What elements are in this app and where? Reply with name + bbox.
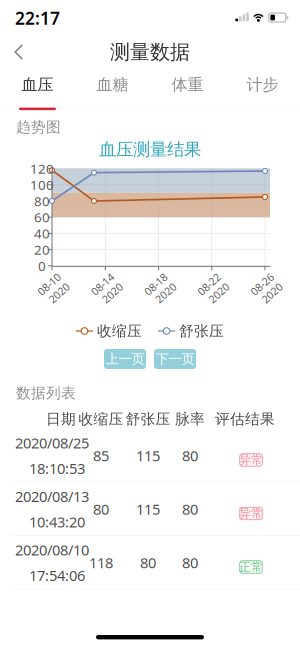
staticText: 120 xyxy=(30,160,54,177)
staticText: 2020/08/25 xyxy=(15,433,89,452)
staticText: 数据列表 xyxy=(16,384,76,402)
staticText: 异常 xyxy=(239,506,263,521)
staticText: 17:54:06 xyxy=(29,565,85,585)
staticText: 0 xyxy=(38,257,46,275)
button[interactable]: 下一页 xyxy=(154,349,196,369)
staticText: 08-18 xyxy=(134,270,161,284)
staticText: 舒张压 xyxy=(179,322,224,340)
staticText: 18:10:53 xyxy=(29,458,85,478)
staticText: 80 xyxy=(182,499,198,519)
staticText: 体重 xyxy=(171,75,203,94)
button[interactable]: 血糖 xyxy=(75,70,150,108)
staticText: 血压 xyxy=(21,75,53,94)
staticText: 2020 xyxy=(137,283,161,297)
staticText: 下一页 xyxy=(155,351,194,367)
staticText: 收缩压 xyxy=(97,322,142,340)
staticText: 2020 xyxy=(30,283,54,297)
staticText: 舒张压 xyxy=(125,410,170,428)
button[interactable]: 计步 xyxy=(225,70,300,108)
staticText: 08-22 xyxy=(187,270,214,284)
button[interactable]: 上一页 xyxy=(104,349,146,369)
staticText: 上一页 xyxy=(105,351,144,367)
staticText: 2020 xyxy=(243,283,267,297)
button[interactable]: 血压 xyxy=(0,70,75,108)
staticText: 80 xyxy=(182,553,198,572)
staticText: 115 xyxy=(136,446,160,465)
staticText: 2020 xyxy=(190,283,214,297)
staticText: 115 xyxy=(136,499,160,519)
staticText: 22:17 xyxy=(15,6,60,29)
staticText: 异常 xyxy=(239,453,263,467)
staticText: 日期 xyxy=(46,410,76,428)
staticText: 80 xyxy=(93,499,109,519)
staticText: 10:43:20 xyxy=(29,512,85,531)
staticText: 计步 xyxy=(246,75,278,94)
staticText: 血压测量结果 xyxy=(99,139,201,160)
staticText: 118 xyxy=(89,553,113,572)
button[interactable]: Back xyxy=(0,34,39,70)
staticText: 评估结果 xyxy=(215,410,275,428)
staticText: 100 xyxy=(30,176,54,194)
staticText: 正常 xyxy=(239,560,263,574)
staticText: 08-26 xyxy=(240,270,267,284)
staticText: 80 xyxy=(34,192,50,210)
staticText: 收缩压 xyxy=(78,410,123,428)
staticText: 脉率 xyxy=(175,410,205,428)
button[interactable]: 体重 xyxy=(150,70,225,108)
staticText: 08-14 xyxy=(81,270,108,284)
staticText: 40 xyxy=(34,224,50,242)
staticText: 2020/08/13 xyxy=(15,486,89,506)
staticText: 2020/08/10 xyxy=(15,540,89,559)
staticText: 80 xyxy=(140,553,156,572)
staticText: 08-10 xyxy=(27,270,54,284)
staticText: 60 xyxy=(34,208,50,226)
staticText: 85 xyxy=(93,446,109,465)
staticText: 2020 xyxy=(84,283,108,297)
staticText: 20 xyxy=(34,241,50,258)
staticText: 血糖 xyxy=(96,75,128,94)
staticText: 趋势图 xyxy=(16,118,61,136)
staticText: 测量数据 xyxy=(110,40,190,64)
staticText: 80 xyxy=(182,446,198,465)
